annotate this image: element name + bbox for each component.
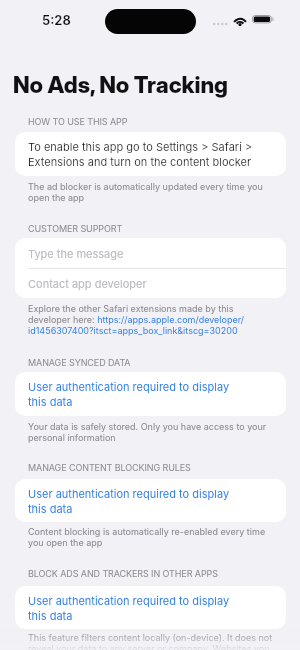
button[interactable]: User authentication required to display … <box>28 380 230 409</box>
staticText: The ad blocker is automatically updated … <box>28 181 263 203</box>
button[interactable]: Explore the other Safari extensions made… <box>28 303 245 336</box>
staticText: This feature filters content locally (on… <box>28 632 273 650</box>
button[interactable]: User authentication required to display … <box>28 487 230 516</box>
staticText: MANAGE SYNCED DATA <box>28 357 131 368</box>
staticText: Type the message <box>28 247 124 260</box>
staticText: Content blocking is automatically re-ena… <box>28 526 266 548</box>
staticText: Contact app developer <box>28 277 147 290</box>
staticText: Your data is safely stored. Only you hav… <box>28 421 267 443</box>
staticText: CUSTOMER SUPPORT <box>28 223 123 234</box>
button[interactable]: Type the message <box>15 238 286 268</box>
button[interactable]: To enable this app go to Settings > Safa… <box>28 140 253 169</box>
staticText: 5:28 <box>42 12 71 28</box>
button[interactable]: User authentication required to display … <box>28 594 230 623</box>
staticText: BLOCK ADS AND TRACKERS IN OTHER APPS <box>28 568 218 579</box>
button[interactable]: Contact app developer <box>15 269 286 298</box>
staticText: MANAGE CONTENT BLOCKING RULES <box>28 462 191 473</box>
staticText: No Ads, No Tracking <box>13 71 228 99</box>
staticText: HOW TO USE THIS APP <box>28 116 128 127</box>
